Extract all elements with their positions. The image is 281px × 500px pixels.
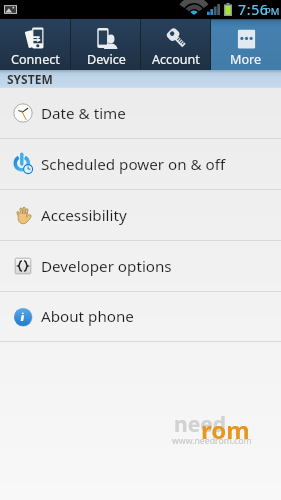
button[interactable]: Scheduled power on & off: [0, 139, 281, 189]
staticText: Connect: [11, 51, 60, 68]
staticText: SYSTEM: [7, 71, 53, 87]
staticText: rom: [201, 413, 250, 446]
staticText: Scheduled power on & off: [41, 154, 226, 175]
staticText: need: [174, 410, 226, 439]
staticText: 7:56: [238, 0, 269, 19]
staticText: Device: [87, 51, 126, 68]
staticText: Account: [152, 51, 200, 68]
staticText: PM: [265, 5, 280, 18]
button[interactable]: More: [211, 19, 281, 70]
button[interactable]: Date & time: [0, 88, 281, 138]
button[interactable]: Accessibility: [0, 190, 281, 240]
button[interactable]: Account: [141, 19, 211, 70]
button[interactable]: About phone: [0, 292, 281, 341]
staticText: Date & time: [41, 103, 126, 124]
staticText: More: [230, 51, 262, 68]
staticText: www.needrom.com: [172, 435, 252, 447]
other: Screenshot captured: [4, 3, 17, 16]
staticText: About phone: [41, 306, 134, 327]
button[interactable]: Device: [71, 19, 141, 70]
button[interactable]: Connect: [0, 19, 71, 70]
staticText: Developer options: [41, 256, 172, 277]
button[interactable]: Developer options: [0, 241, 281, 291]
staticText: Accessibility: [41, 205, 127, 226]
